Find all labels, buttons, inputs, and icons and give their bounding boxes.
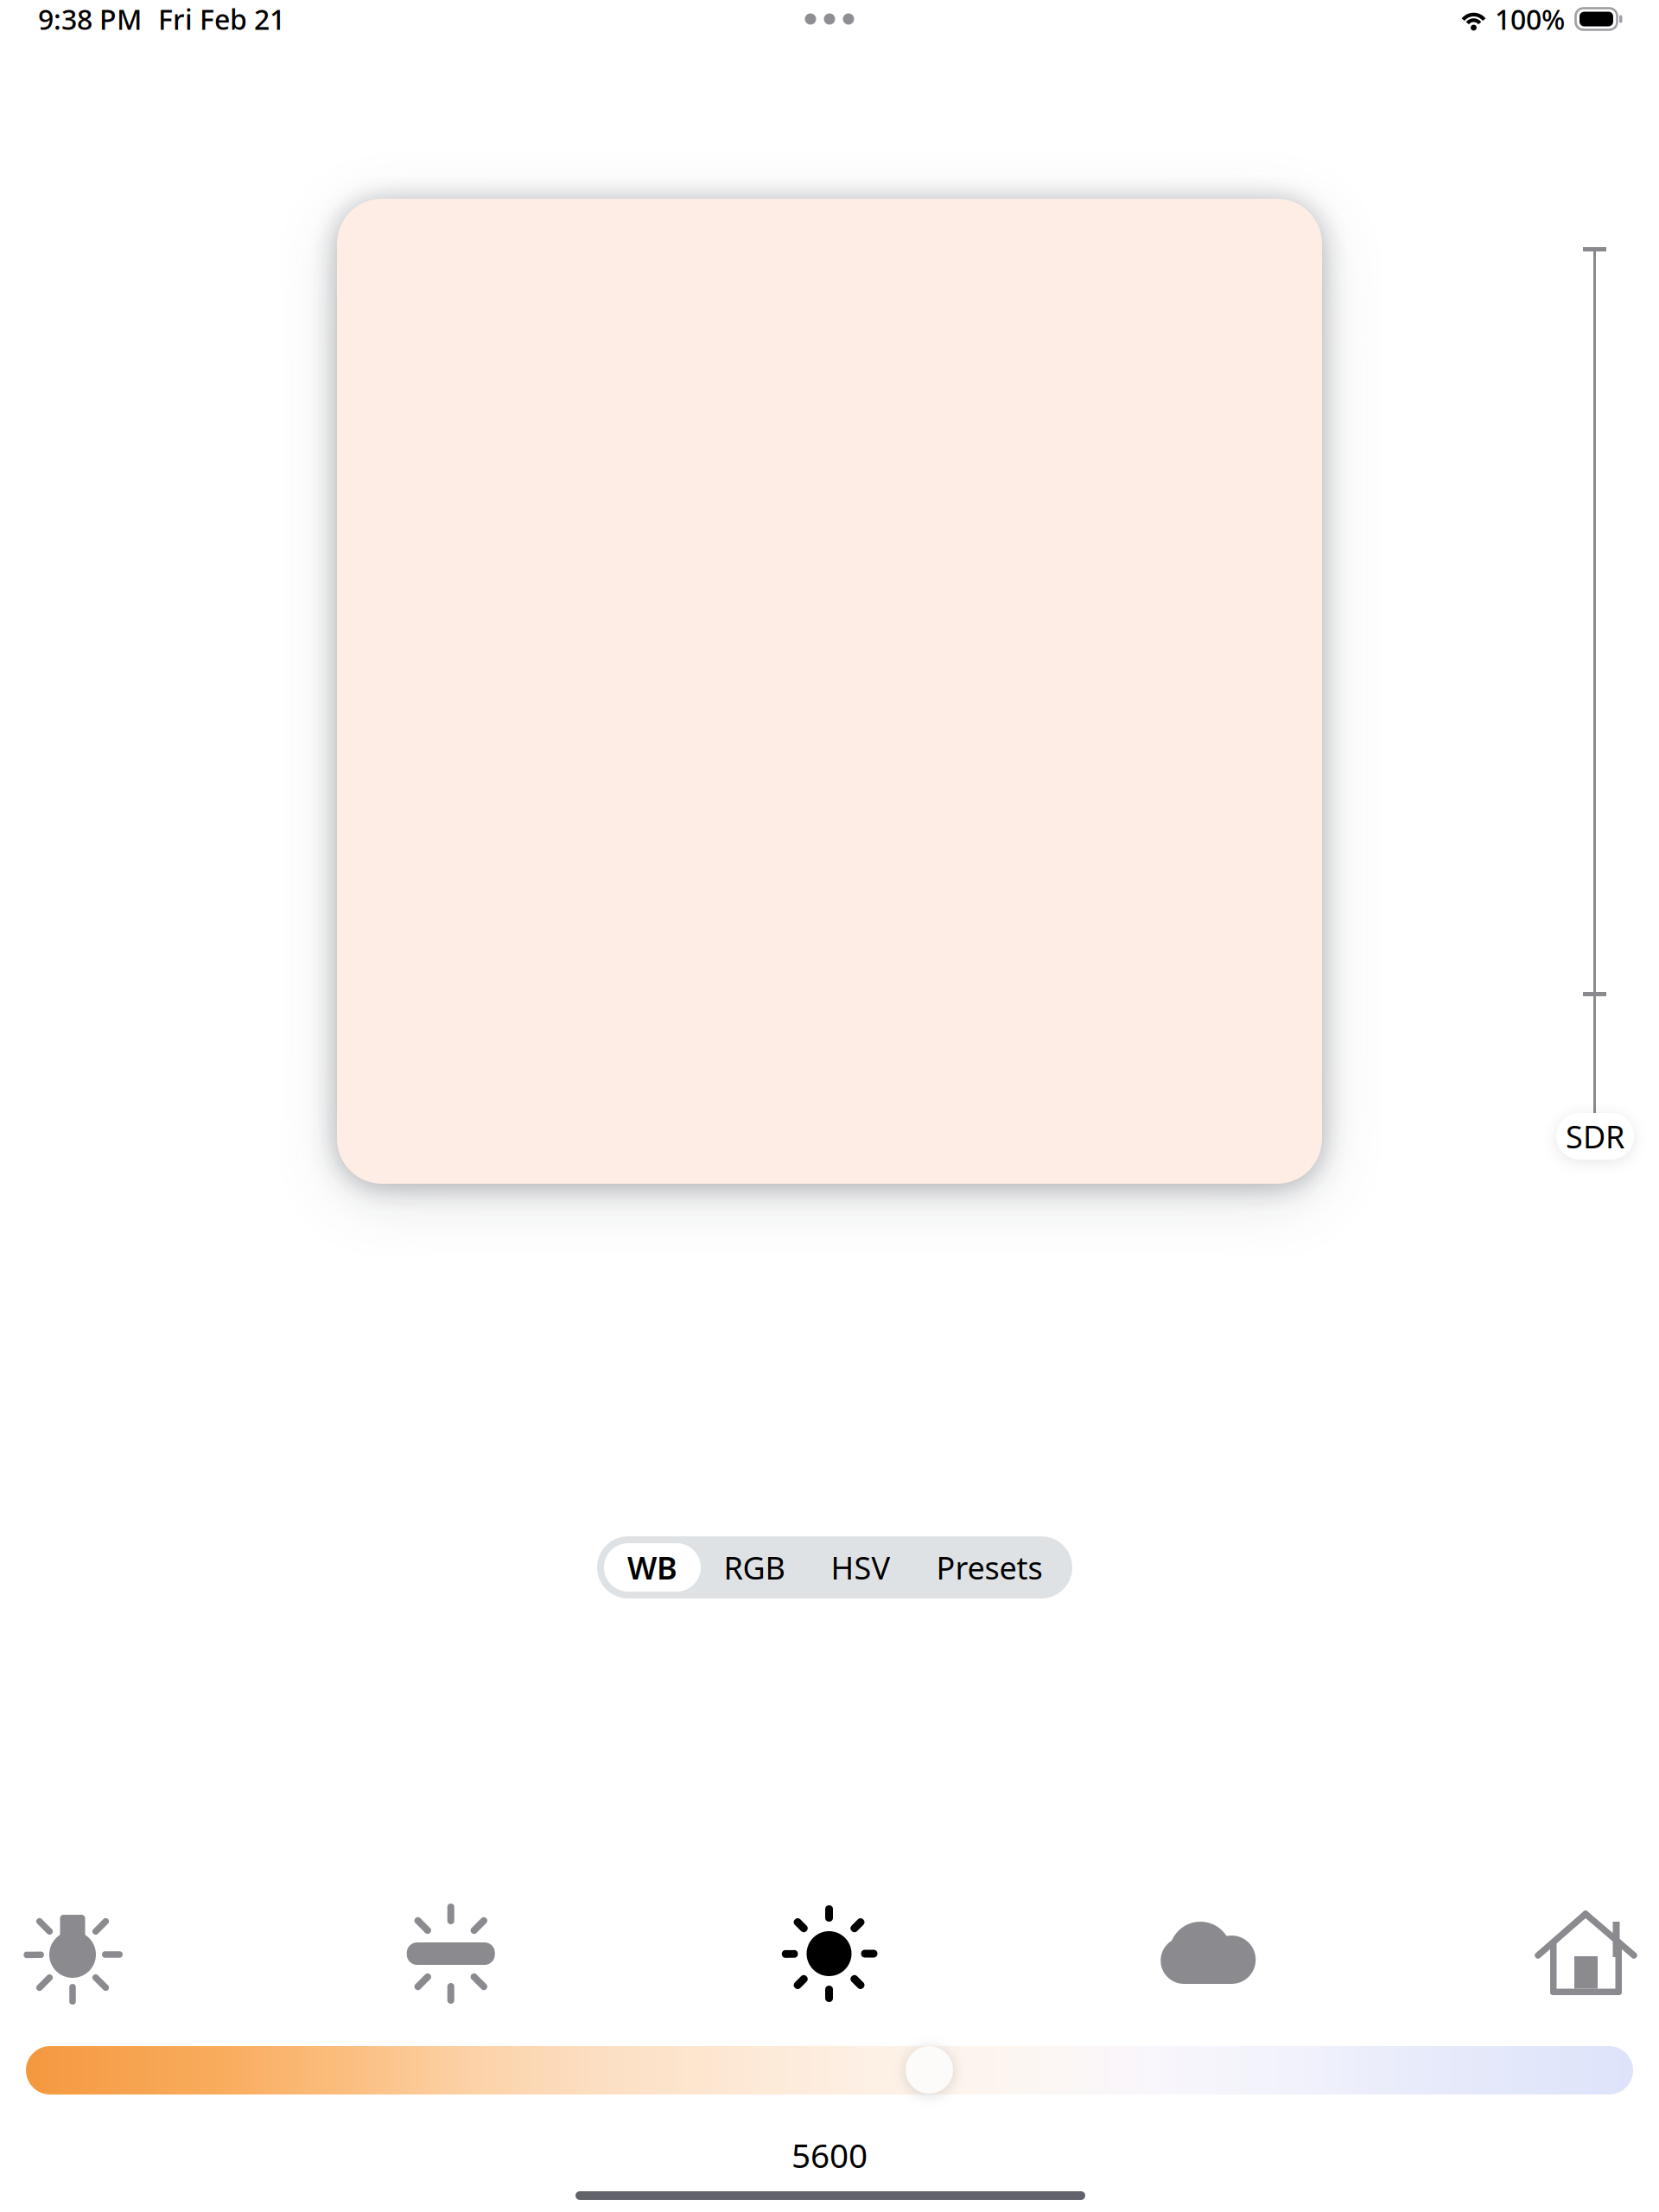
button[interactable]: Multitasking <box>778 0 881 38</box>
staticText: WB <box>627 1547 677 1588</box>
staticText: Presets <box>936 1547 1042 1588</box>
staticText: Fri Feb 21 <box>158 1 285 37</box>
staticText: 100% <box>1495 1 1565 37</box>
button[interactable]: Daylight <box>777 1902 881 2005</box>
button[interactable]: Shade <box>1534 1902 1637 2005</box>
button[interactable]: RGB <box>701 1543 808 1592</box>
staticText: RGB <box>724 1547 785 1588</box>
button[interactable]: Cloudy <box>1155 1902 1259 2005</box>
button[interactable]: Tungsten <box>21 1902 124 2005</box>
staticText: 9:38 PM <box>38 1 142 37</box>
button[interactable]: HSV <box>808 1543 913 1592</box>
staticText: SDR <box>1566 1116 1624 1157</box>
staticText: 5600 <box>791 2133 868 2177</box>
button[interactable]: Fluorescent <box>399 1902 503 2005</box>
button[interactable]: WB <box>604 1543 701 1592</box>
staticText: HSV <box>831 1547 890 1588</box>
button[interactable]: SDR <box>1556 1113 1634 1160</box>
button[interactable]: Presets <box>913 1543 1065 1592</box>
